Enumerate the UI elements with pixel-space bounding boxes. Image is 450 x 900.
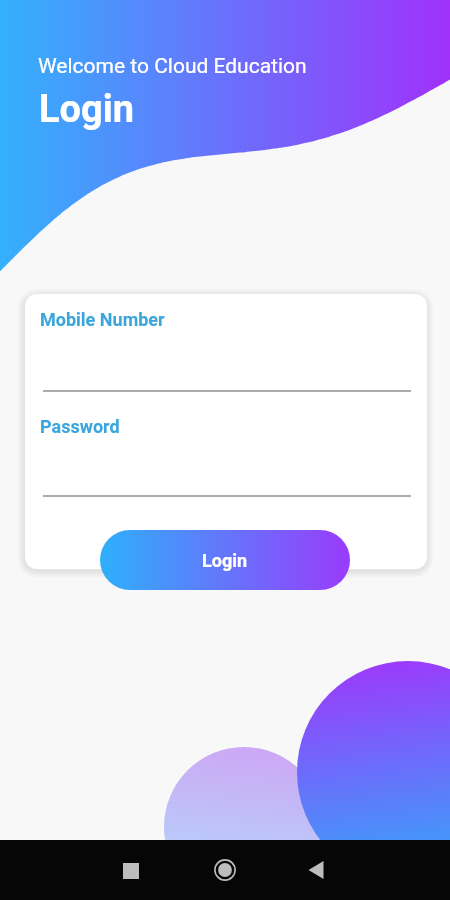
button[interactable]: Home [178, 840, 272, 900]
button[interactable]: Back [272, 840, 450, 900]
button[interactable]: Mobile Number [40, 302, 412, 397]
staticText: Login [39, 87, 135, 132]
staticText: Login [202, 550, 248, 571]
staticText: Mobile Number [40, 309, 165, 330]
button[interactable]: Password [40, 408, 412, 503]
button[interactable]: Login [100, 530, 350, 590]
button[interactable]: Recent apps [0, 840, 178, 900]
staticText: Welcome to Cloud Education [38, 54, 307, 79]
staticText: Password [40, 416, 120, 437]
